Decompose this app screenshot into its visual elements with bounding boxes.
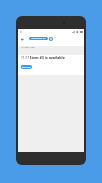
staticText: Notebook #1 xyxy=(31,36,46,39)
button[interactable] xyxy=(18,55,84,75)
staticText: Item #3 is available xyxy=(30,55,65,60)
staticText: Show details xyxy=(22,66,31,68)
button[interactable] xyxy=(29,37,48,40)
button[interactable]: Back xyxy=(19,36,25,42)
staticText: 15 April, Sun xyxy=(21,46,35,49)
staticText: 11:17 xyxy=(21,56,30,60)
button[interactable] xyxy=(21,65,32,69)
button[interactable]: Info xyxy=(49,37,53,41)
